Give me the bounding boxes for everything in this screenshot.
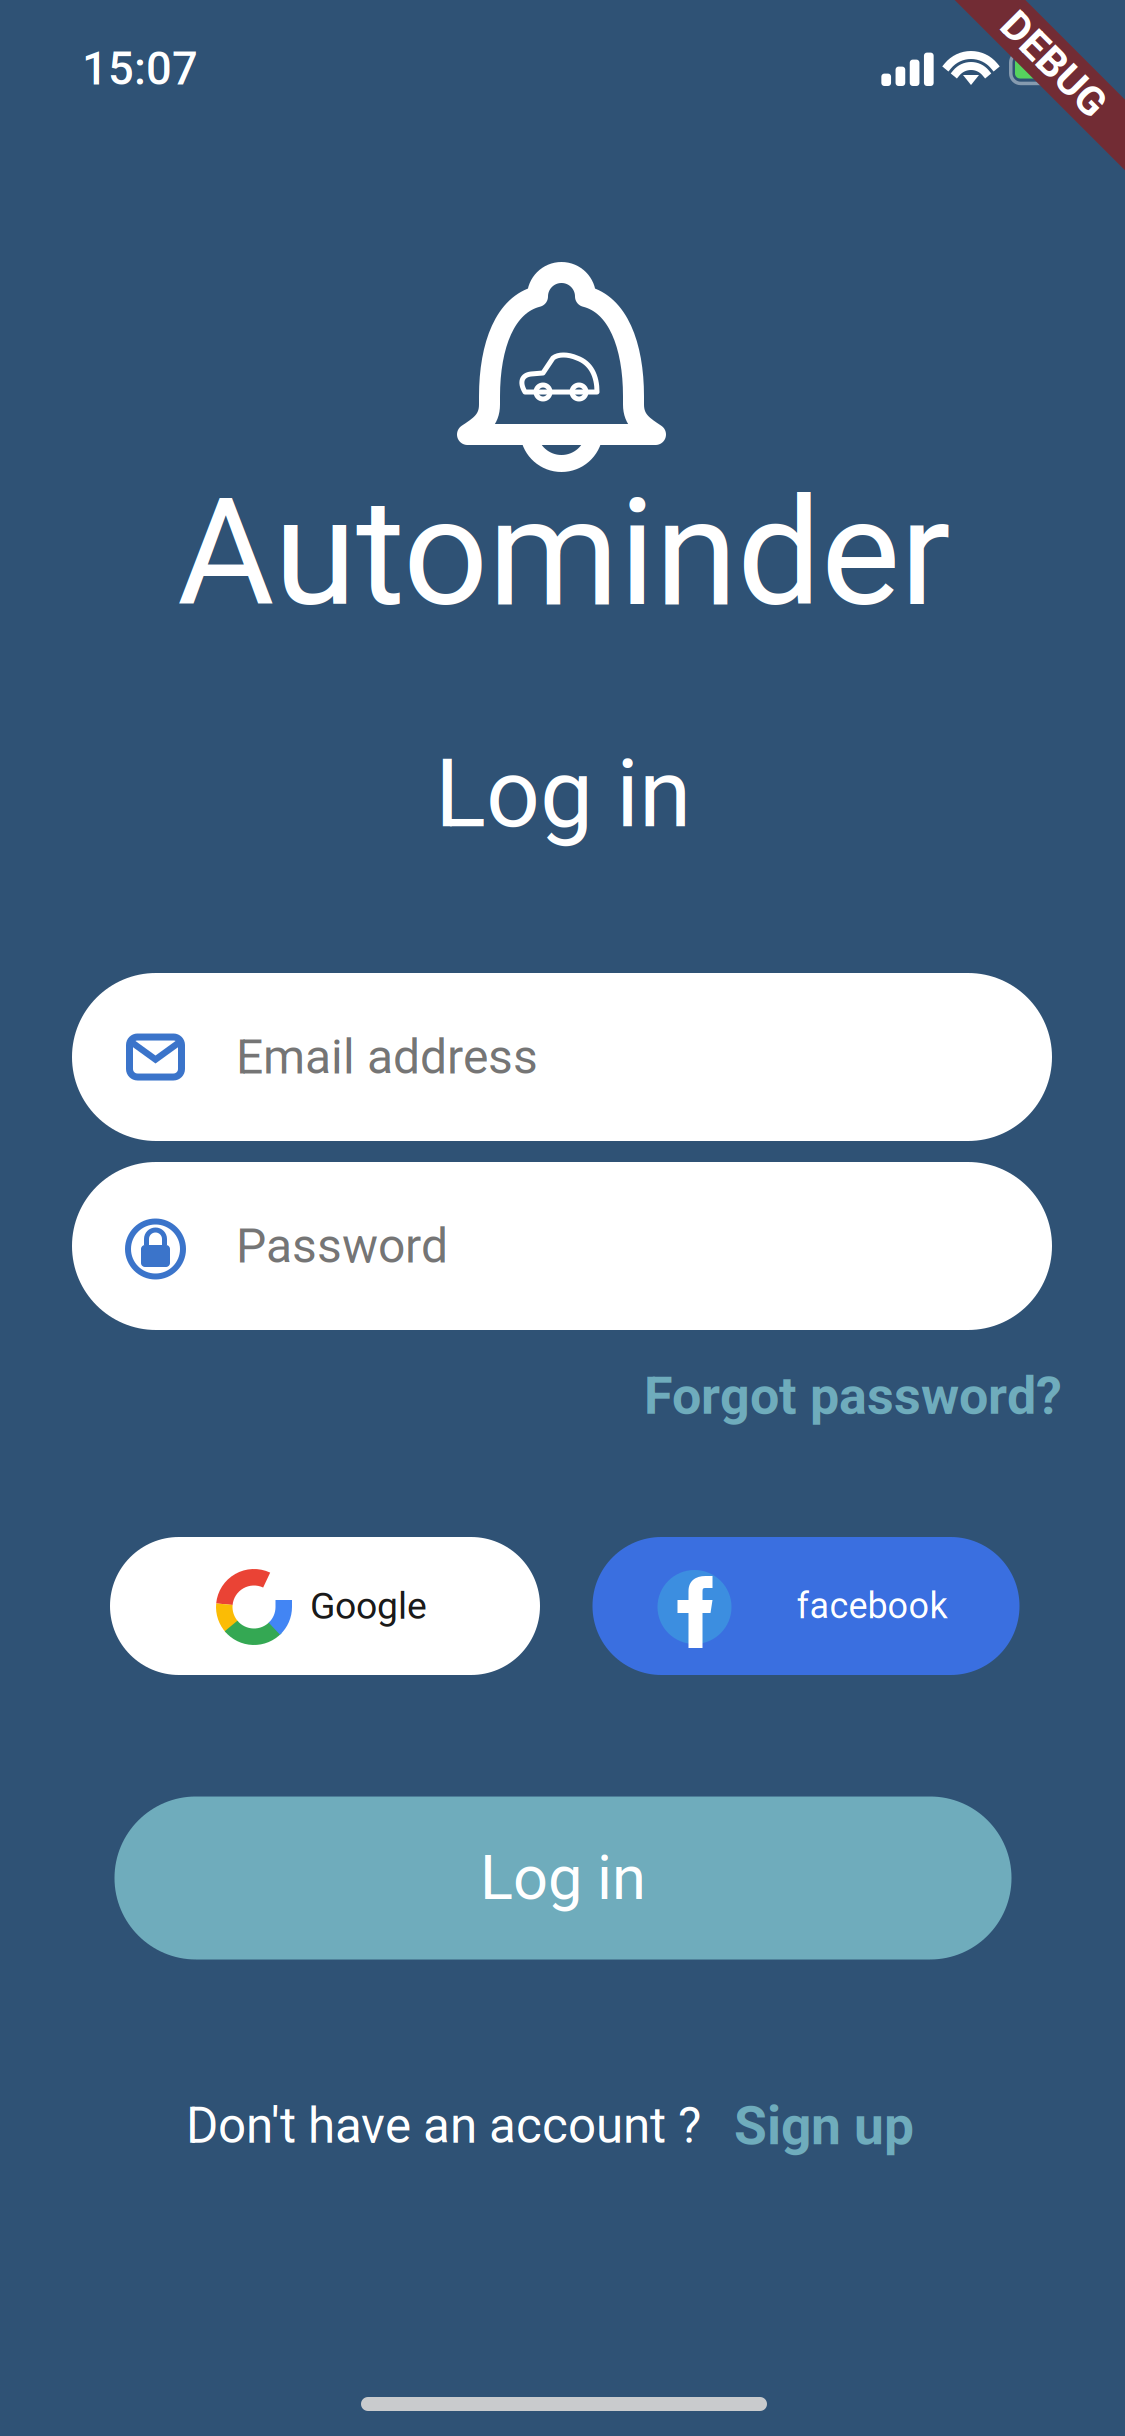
button[interactable]: Forgot password?: [636, 1355, 1070, 1436]
staticText: Autominder: [177, 465, 951, 640]
button[interactable]: Google: [110, 1537, 540, 1675]
staticText: facebook: [796, 1585, 947, 1627]
staticText: DEBUG: [988, 40, 1119, 88]
staticText: Password: [236, 1218, 448, 1274]
button[interactable]: Password: [72, 1162, 1052, 1330]
button[interactable]: facebook: [592, 1537, 1019, 1675]
staticText: Google: [310, 1584, 427, 1628]
staticText: Forgot password?: [644, 1365, 1062, 1426]
button[interactable]: Log in: [114, 1796, 1011, 1959]
staticText: Log in: [480, 1842, 646, 1914]
button[interactable]: Email address: [72, 973, 1052, 1141]
staticText: Log in: [435, 738, 691, 849]
staticText: Sign up: [734, 2095, 914, 2157]
staticText: Email address: [236, 1029, 538, 1085]
button[interactable]: Sign up: [734, 2095, 914, 2157]
staticText: Don't have an account ?: [186, 2097, 701, 2155]
staticText: 15:07: [82, 42, 198, 95]
